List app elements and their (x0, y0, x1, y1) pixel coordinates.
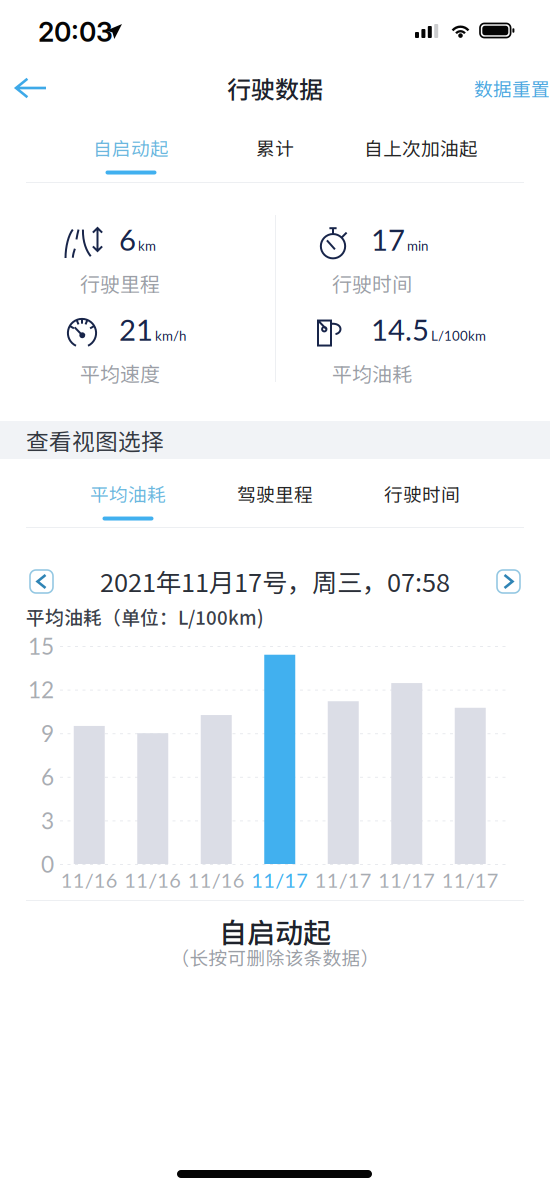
staticText: 3 (41, 807, 54, 834)
staticText: 11/17 (442, 868, 499, 892)
button[interactable]: 自启动起 (93, 134, 169, 176)
staticText: 平均油耗（单位：L/100km) (26, 603, 264, 630)
button[interactable]: 累计 (249, 134, 300, 176)
button[interactable]: Previous day (30, 570, 53, 593)
staticText: 20:03 (38, 16, 113, 48)
staticText: 21 (119, 312, 153, 347)
button[interactable]: Back (0, 64, 61, 112)
button[interactable]: 行驶时间 (384, 480, 460, 522)
staticText: 平均油耗 (90, 480, 166, 507)
staticText: 2021年11月17号，周三，07:58 (100, 563, 450, 599)
staticText: 11/16 (61, 868, 118, 892)
staticText: 17 (371, 222, 405, 257)
staticText: L/100km (431, 328, 486, 344)
button[interactable]: 驾驶里程 (237, 480, 313, 522)
staticText: 11/16 (124, 868, 181, 892)
button[interactable]: Next day (497, 570, 520, 593)
staticText: 15 (28, 632, 54, 660)
staticText: 0 (41, 850, 54, 878)
staticText: 平均速度 (80, 358, 160, 387)
staticText: 11/16 (188, 868, 245, 892)
staticText: 行驶时间 (384, 480, 460, 507)
staticText: 查看视图选择 (26, 424, 164, 456)
staticText: 自启动起 (219, 911, 331, 951)
staticText: 累计 (256, 134, 294, 161)
staticText: 14.5 (371, 312, 429, 347)
button[interactable]: 平均油耗 (90, 480, 166, 522)
staticText: （长按可删除该条数据） (170, 943, 379, 970)
button[interactable]: 自上次加油起 (364, 134, 478, 176)
staticText: 数据重置 (474, 74, 550, 101)
staticText: 11/17 (251, 868, 308, 892)
staticText: 9 (41, 720, 54, 747)
staticText: 行驶里程 (80, 268, 160, 297)
staticText: 11/17 (378, 868, 435, 892)
staticText: km (138, 238, 156, 254)
staticText: 6 (41, 763, 54, 790)
staticText: min (407, 238, 428, 254)
staticText: 平均油耗 (332, 358, 412, 387)
button[interactable]: 数据重置 (474, 60, 550, 115)
staticText: 自启动起 (93, 134, 169, 161)
staticText: 行驶数据 (227, 71, 323, 105)
staticText: 驾驶里程 (237, 480, 313, 507)
staticText: 自上次加油起 (364, 134, 478, 161)
staticText: 11/17 (315, 868, 372, 892)
staticText: 行驶时间 (332, 268, 412, 297)
staticText: 6 (119, 222, 136, 257)
staticText: km/h (155, 328, 186, 344)
staticText: 12 (28, 676, 54, 703)
